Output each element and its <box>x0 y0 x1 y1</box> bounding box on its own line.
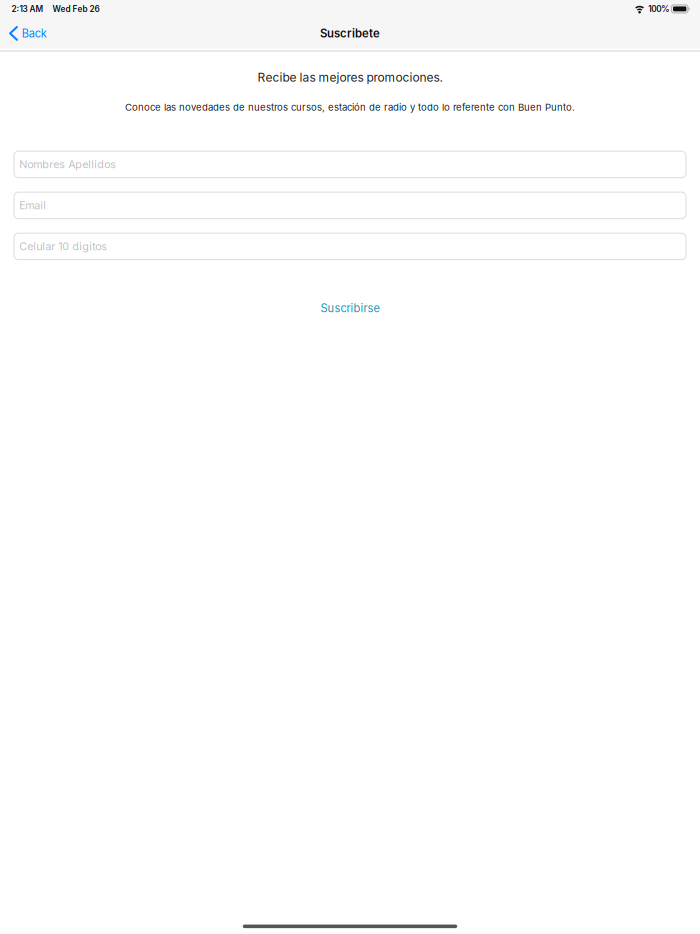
button[interactable]: Email <box>14 192 686 219</box>
staticText: 2:13 AM <box>11 4 43 14</box>
staticText: Conoce las novedades de nuestros cursos,… <box>125 101 575 113</box>
staticText: Email <box>19 199 46 212</box>
staticText: Nombres Apellidos <box>19 158 116 171</box>
staticText: 100% <box>648 4 669 14</box>
button[interactable]: Back <box>0 20 55 47</box>
staticText: Suscribete <box>320 26 380 40</box>
button[interactable]: Suscribirse <box>302 294 397 323</box>
staticText: Back <box>22 27 47 40</box>
staticText: Recibe las mejores promociones. <box>257 70 442 84</box>
button[interactable]: Nombres Apellidos <box>14 151 686 178</box>
staticText: Celular 10 digitos <box>19 240 107 253</box>
button[interactable]: Celular 10 digitos <box>14 233 686 260</box>
staticText: Suscribirse <box>320 302 379 315</box>
staticText: Wed Feb 26 <box>52 4 99 14</box>
